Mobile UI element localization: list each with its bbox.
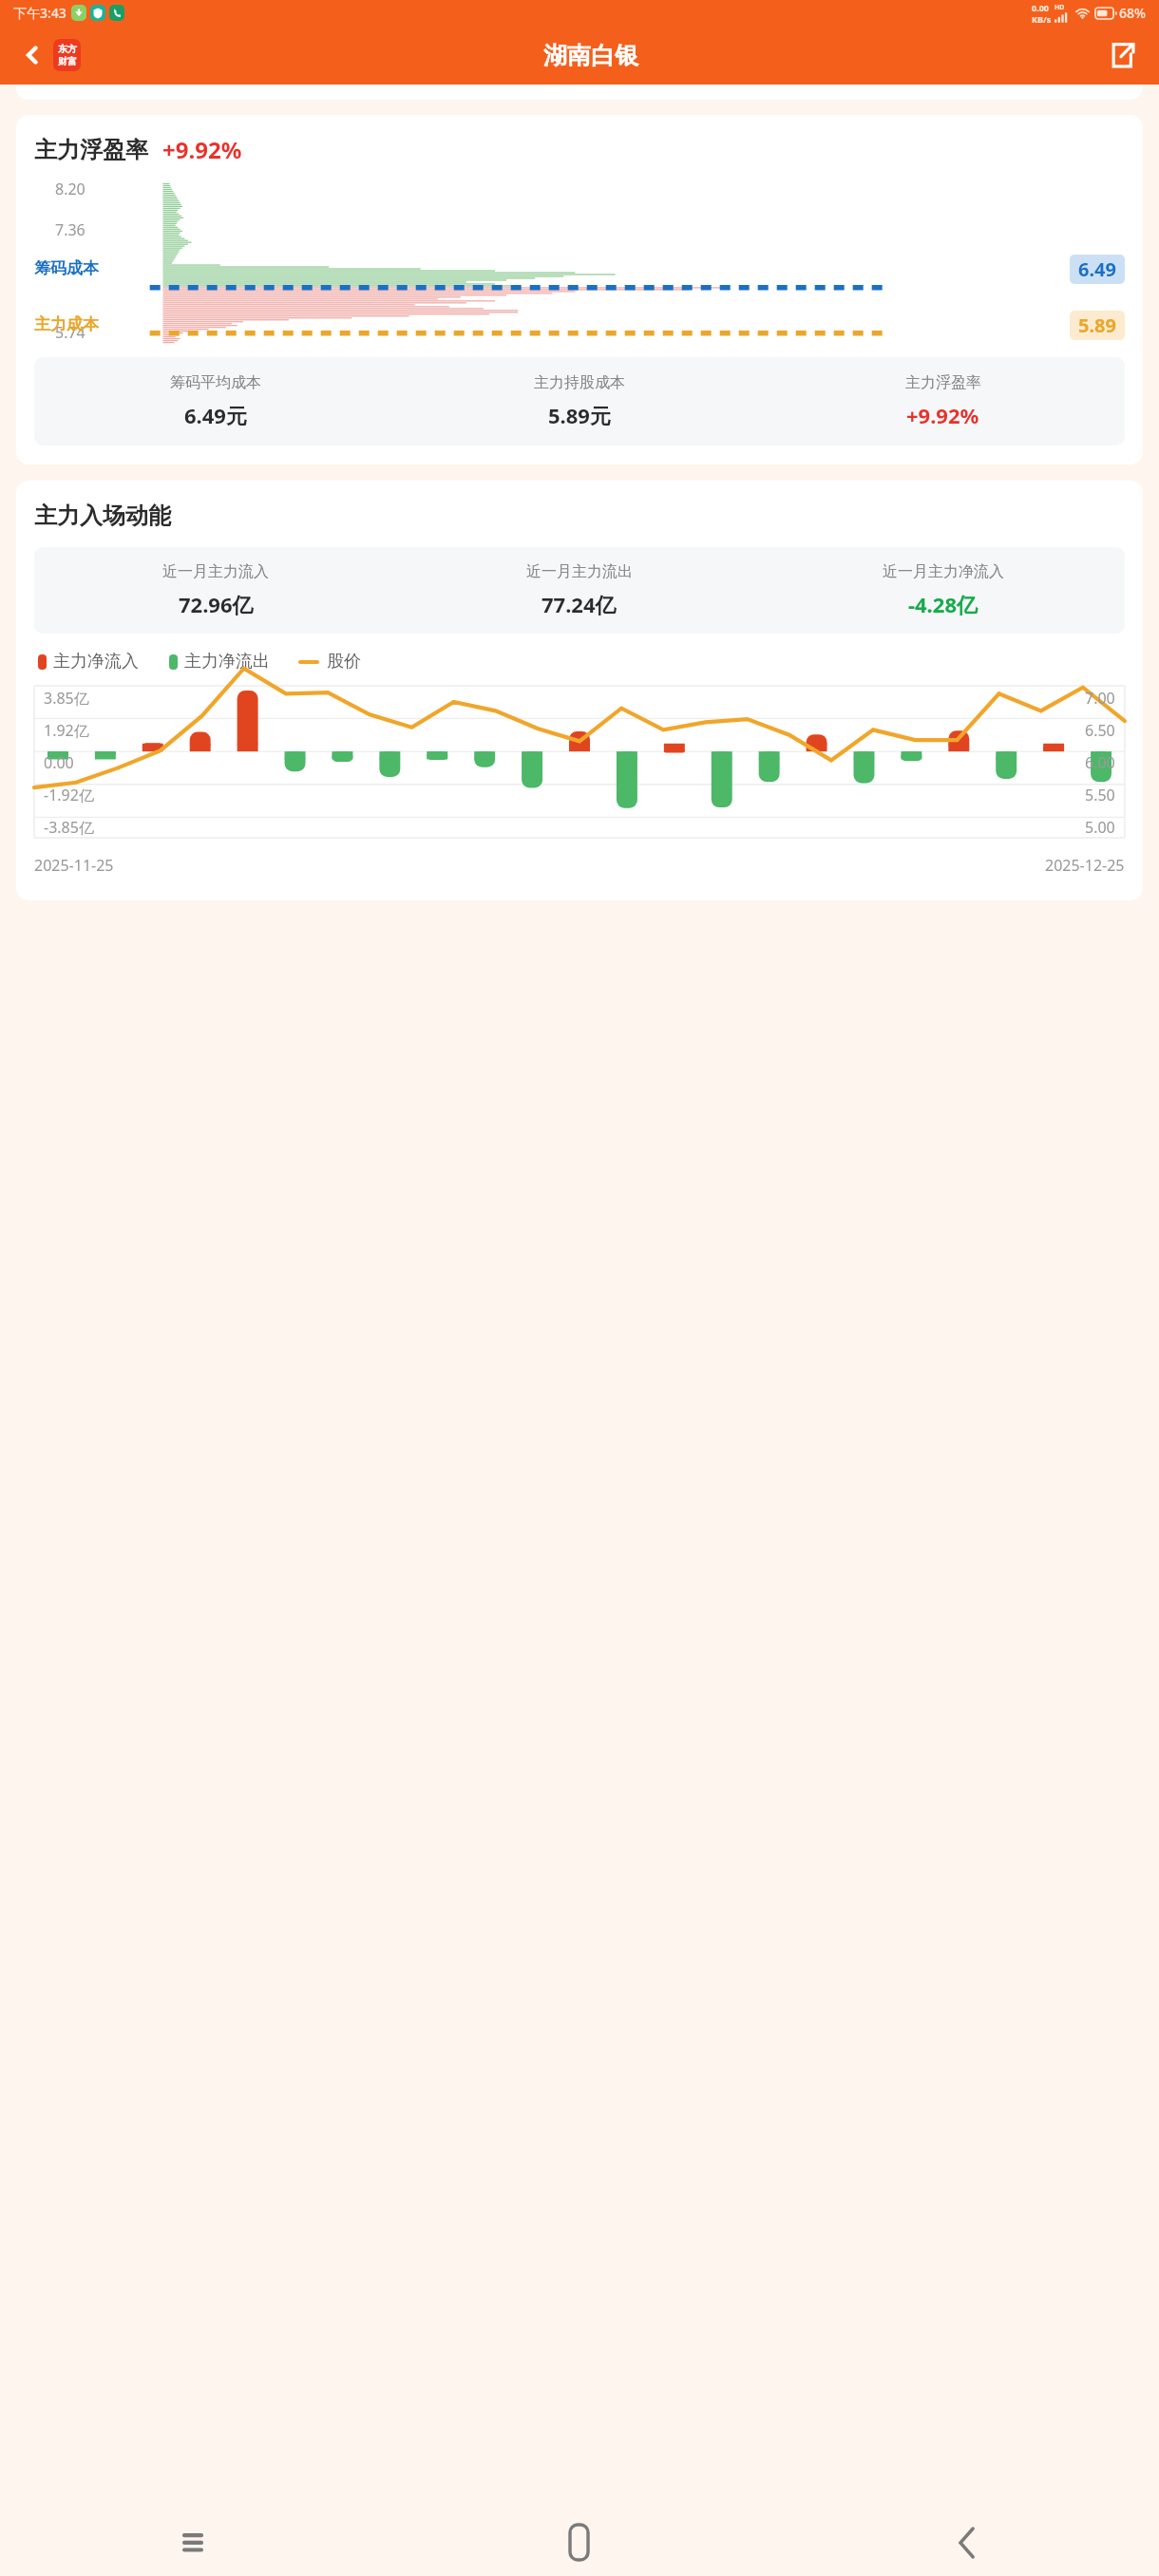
button[interactable]: Share <box>1102 35 1142 75</box>
button[interactable]: Back <box>772 2509 1159 2576</box>
staticText: 筹码平均成本 <box>170 373 261 392</box>
button[interactable]: 主力浮盈率 <box>16 115 1143 464</box>
staticText: 近一月主力净流入 <box>883 562 1004 581</box>
staticText: KB/s <box>1032 13 1052 25</box>
staticText: 筹码成本 <box>34 258 99 278</box>
staticText: 主力入场动能 <box>34 502 171 530</box>
staticText: 77.24亿 <box>541 590 617 618</box>
staticText: 下午3:43 <box>13 4 66 22</box>
staticText: 8.20 <box>55 179 85 199</box>
staticText: 7.00 <box>1085 688 1115 709</box>
button[interactable]: Back <box>13 36 51 74</box>
staticText: 5.89 <box>1078 313 1116 338</box>
staticText: 主力净流出 <box>184 651 270 672</box>
staticText: 3.85亿 <box>44 688 89 709</box>
staticText: 主力净流入 <box>53 651 139 672</box>
staticText: +9.92% <box>906 401 979 429</box>
staticText: 6.00 <box>1085 752 1115 773</box>
staticText: 主力持股成本 <box>534 373 625 392</box>
staticText: 近一月主力流出 <box>526 562 633 581</box>
staticText: 68% <box>1119 4 1146 22</box>
staticText: 7.36 <box>55 219 85 240</box>
button[interactable]: Recent apps <box>0 2509 386 2576</box>
staticText: 主力浮盈率 <box>34 136 148 164</box>
button[interactable]: Home <box>386 2509 772 2576</box>
staticText: -3.85亿 <box>44 817 94 838</box>
staticText: 1.92亿 <box>44 720 89 741</box>
staticText: 股价 <box>327 651 361 672</box>
button[interactable]: 东方财富 <box>53 39 81 71</box>
staticText: 近一月主力流入 <box>162 562 269 581</box>
staticText: 6.49 <box>1078 256 1116 282</box>
staticText: +9.92% <box>162 134 242 165</box>
staticText: 财富 <box>58 55 77 67</box>
staticText: -4.28亿 <box>908 590 978 618</box>
staticText: -1.92亿 <box>44 785 94 805</box>
staticText: 5.89元 <box>548 401 611 429</box>
staticText: 6.49元 <box>184 401 247 429</box>
staticText: 2025-12-25 <box>1045 855 1125 876</box>
button[interactable]: 主力入场动能 <box>16 481 1143 900</box>
staticText: 湖南白银 <box>543 41 638 70</box>
staticText: 6.50 <box>1085 720 1115 741</box>
staticText: 主力浮盈率 <box>905 373 981 392</box>
staticText: 72.96亿 <box>179 590 254 618</box>
staticText: HD <box>1054 3 1065 12</box>
staticText: 0.00 <box>1032 2 1049 13</box>
staticText: 0.00 <box>44 752 74 773</box>
staticText: 5.00 <box>1085 817 1115 838</box>
staticText: 5.74 <box>55 322 85 343</box>
staticText: 2025-11-25 <box>34 855 114 876</box>
staticText: 主力成本 <box>34 314 99 334</box>
staticText: 5.50 <box>1085 785 1115 805</box>
staticText: 东方 <box>58 43 77 55</box>
